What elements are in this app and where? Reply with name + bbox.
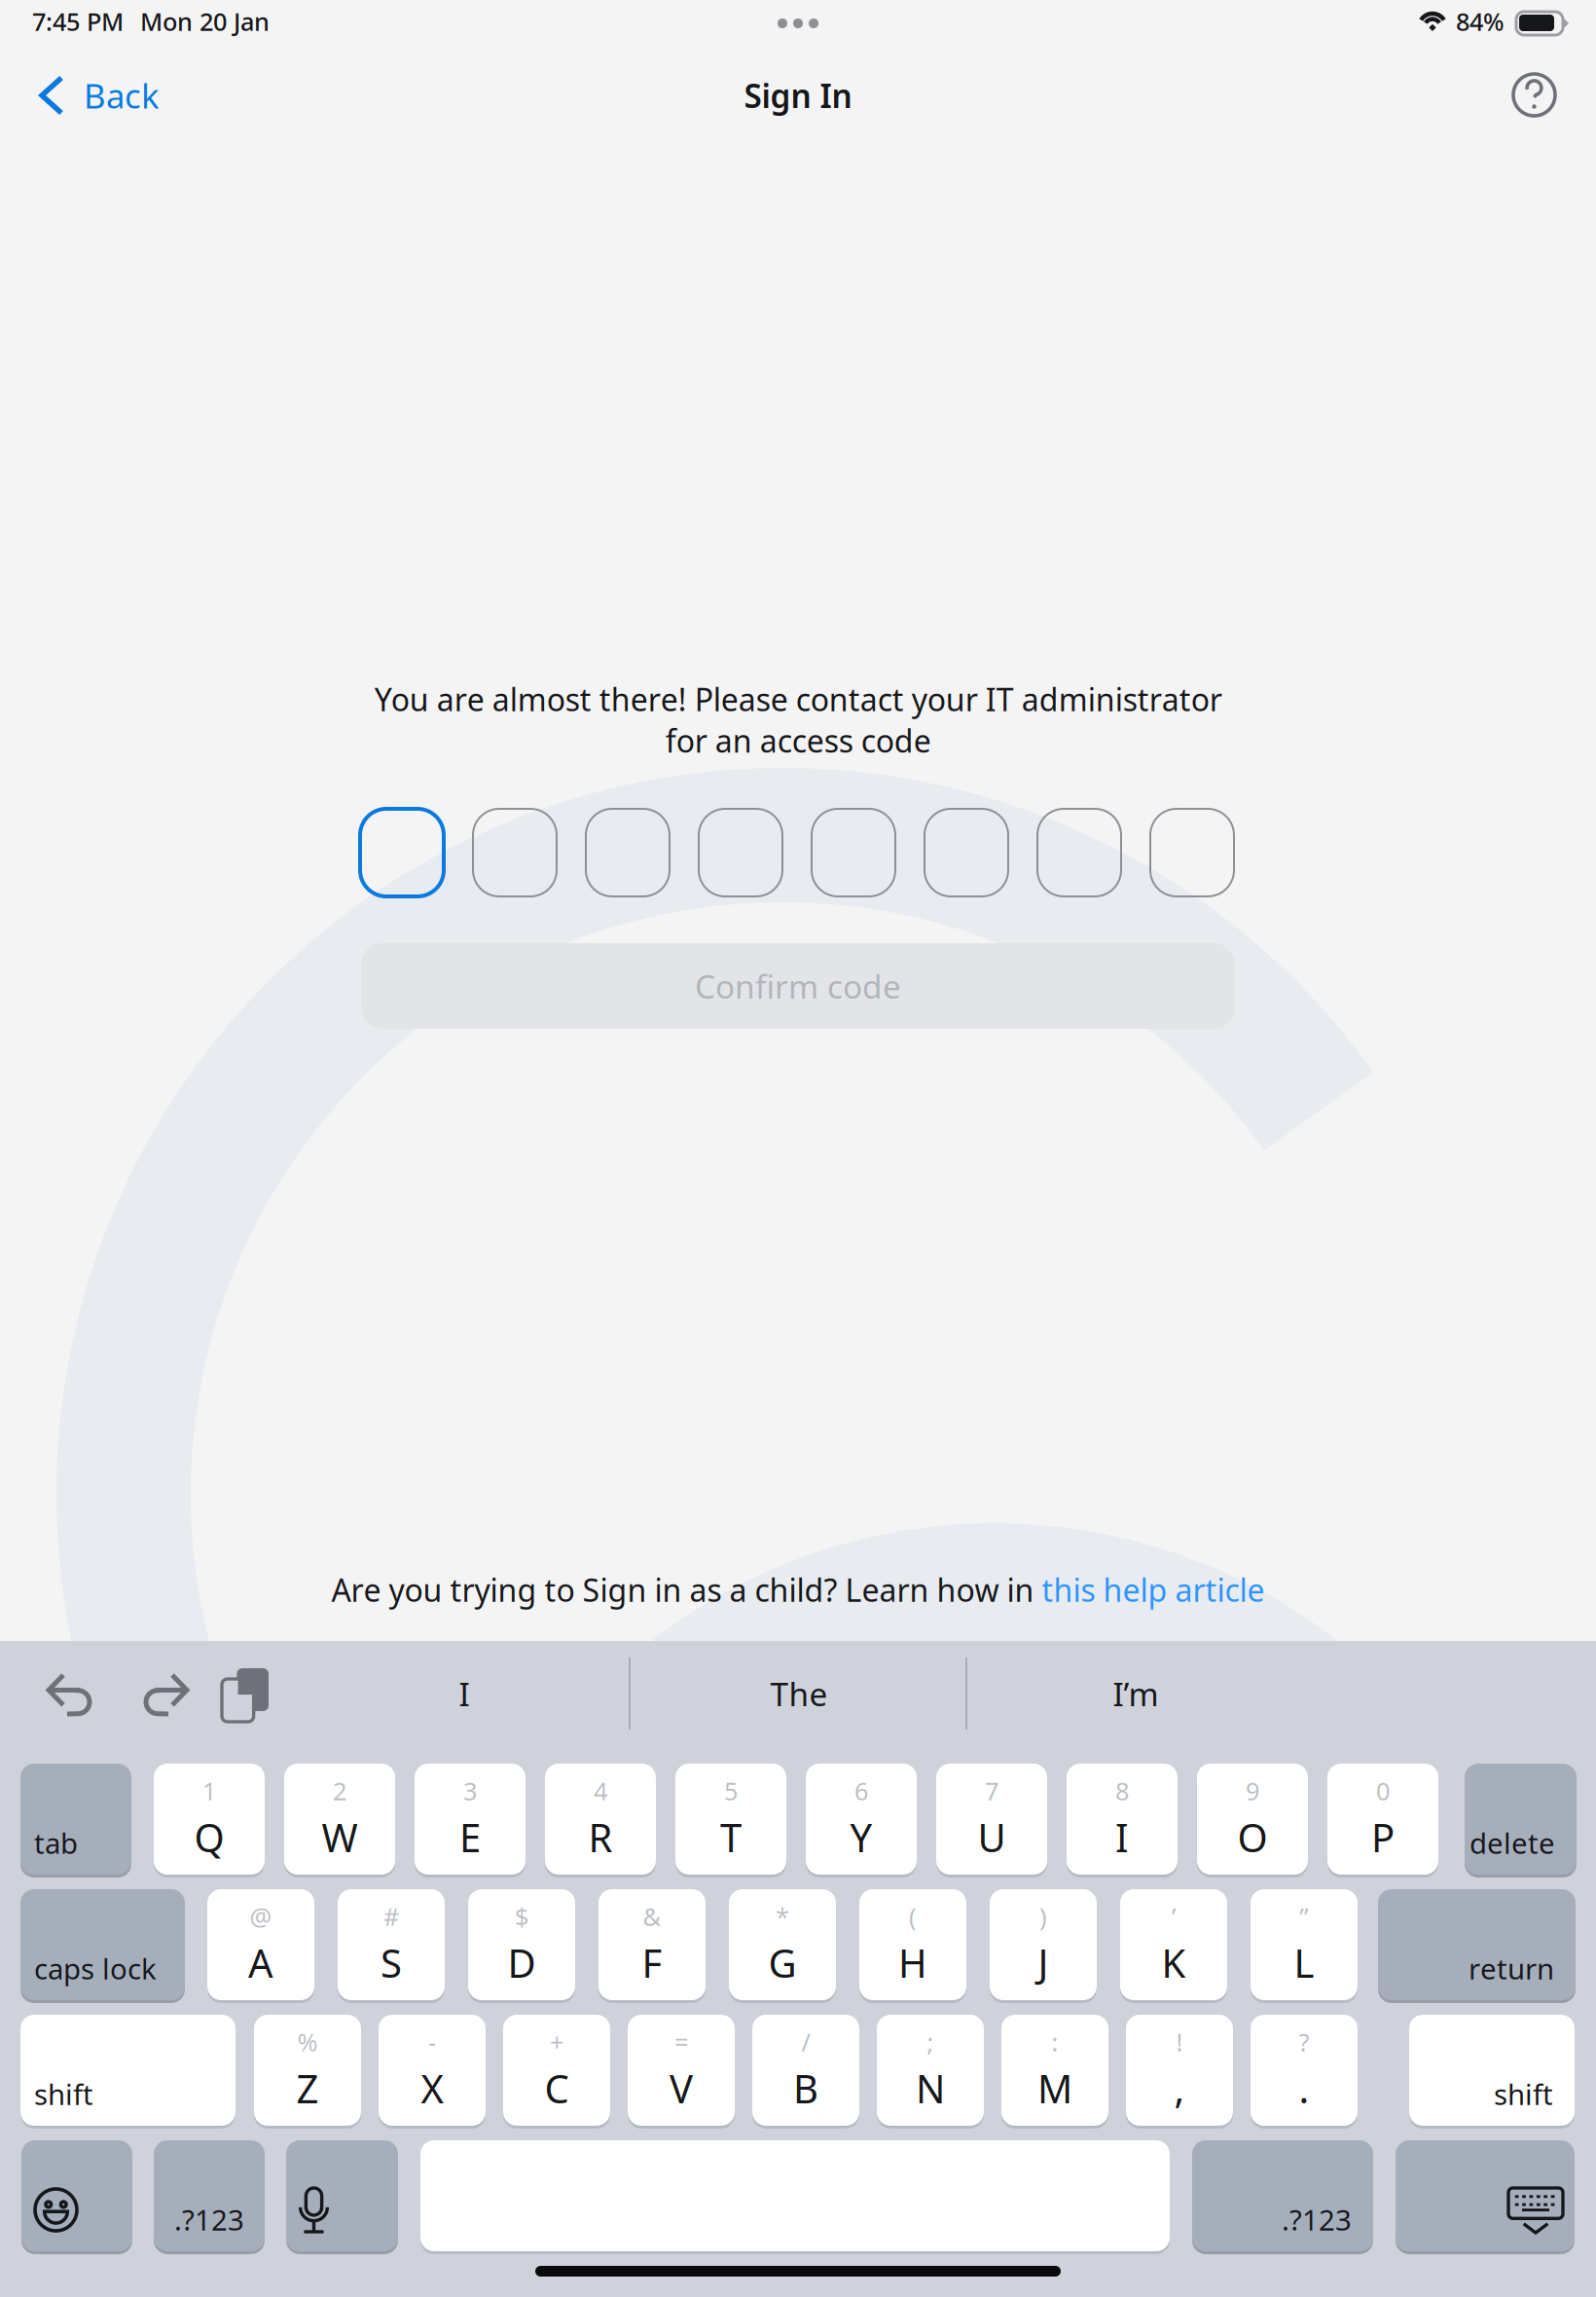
staticText: C bbox=[544, 2062, 569, 2114]
button[interactable]: ? bbox=[1251, 2015, 1358, 2126]
staticText: K bbox=[1161, 1937, 1186, 1989]
button[interactable]: * bbox=[729, 1889, 836, 2000]
staticText: U bbox=[978, 1811, 1006, 1863]
button[interactable]: Help bbox=[1496, 56, 1573, 133]
button[interactable]: I’m bbox=[968, 1649, 1303, 1738]
staticText: 84% bbox=[1456, 5, 1505, 38]
button[interactable]: .?123 bbox=[1192, 2140, 1373, 2251]
button[interactable]: Are you trying to Sign in as a child? Le… bbox=[0, 1559, 1596, 1620]
button[interactable]: 8 bbox=[1067, 1764, 1178, 1875]
button[interactable]: # bbox=[338, 1889, 445, 2000]
button[interactable]: $ bbox=[468, 1889, 575, 2000]
button[interactable]: The bbox=[632, 1649, 966, 1738]
staticText: .?123 bbox=[1282, 2201, 1352, 2239]
button[interactable]: 3 bbox=[415, 1764, 526, 1875]
button[interactable]: Dictation bbox=[286, 2140, 398, 2251]
staticText: shift bbox=[1494, 2075, 1553, 2113]
staticText: 3 bbox=[463, 1774, 477, 1807]
staticText: L bbox=[1294, 1937, 1314, 1989]
button[interactable]: + bbox=[503, 2015, 610, 2126]
staticText: R bbox=[588, 1811, 613, 1863]
button[interactable]: Confirm code bbox=[361, 943, 1235, 1029]
button[interactable]: 4 bbox=[545, 1764, 656, 1875]
staticText: / bbox=[801, 2025, 810, 2058]
button[interactable]: ! bbox=[1126, 2015, 1233, 2126]
staticText: # bbox=[383, 1900, 399, 1933]
staticText: You are almost there! Please contact you… bbox=[374, 678, 1222, 761]
staticText: shift bbox=[34, 2075, 93, 2113]
staticText: & bbox=[643, 1900, 661, 1933]
button[interactable]: Hide keyboard bbox=[1396, 2140, 1575, 2251]
staticText: 9 bbox=[1246, 1774, 1259, 1807]
button[interactable]: Undo bbox=[30, 1656, 119, 1731]
button[interactable]: ’ bbox=[1120, 1889, 1227, 2000]
staticText: Q bbox=[194, 1811, 224, 1863]
button[interactable]: % bbox=[254, 2015, 361, 2126]
button[interactable]: ; bbox=[877, 2015, 984, 2126]
staticText: caps lock bbox=[34, 1950, 157, 1987]
staticText: 7 bbox=[985, 1774, 998, 1807]
staticText: ? bbox=[1299, 2025, 1309, 2058]
staticText: .?123 bbox=[174, 2201, 244, 2239]
staticText: % bbox=[297, 2025, 318, 2058]
staticText: X bbox=[421, 2062, 443, 2114]
button[interactable]: & bbox=[598, 1889, 706, 2000]
button[interactable]: = bbox=[628, 2015, 735, 2126]
button[interactable]: 7 bbox=[936, 1764, 1047, 1875]
button[interactable]: tab bbox=[20, 1764, 131, 1875]
button[interactable]: delete bbox=[1465, 1764, 1577, 1875]
staticText: Y bbox=[850, 1811, 872, 1863]
button[interactable]: 2 bbox=[284, 1764, 395, 1875]
staticText: , bbox=[1174, 2062, 1185, 2114]
button[interactable]: shift bbox=[1409, 2015, 1575, 2126]
button[interactable]: ) bbox=[990, 1889, 1097, 2000]
staticText: H bbox=[898, 1937, 927, 1989]
button[interactable]: / bbox=[752, 2015, 859, 2126]
staticText: Z bbox=[296, 2062, 319, 2114]
staticText: J bbox=[1038, 1937, 1049, 1989]
button[interactable]: Paste bbox=[206, 1653, 284, 1737]
staticText: 5 bbox=[724, 1774, 738, 1807]
staticText: F bbox=[642, 1937, 662, 1989]
button[interactable]: ( bbox=[859, 1889, 966, 2000]
button[interactable]: Redo bbox=[117, 1656, 205, 1731]
button[interactable]: return bbox=[1378, 1889, 1576, 2000]
staticText: 7:45 PM bbox=[32, 5, 124, 38]
button[interactable]: - bbox=[379, 2015, 486, 2126]
staticText: T bbox=[720, 1811, 742, 1863]
staticText: 2 bbox=[333, 1774, 346, 1807]
staticText: = bbox=[674, 2025, 688, 2058]
button[interactable]: 0 bbox=[1327, 1764, 1438, 1875]
staticText: ” bbox=[1300, 1900, 1308, 1933]
staticText: I’m bbox=[1113, 1672, 1159, 1715]
button[interactable] bbox=[420, 2140, 1170, 2251]
button[interactable]: : bbox=[1001, 2015, 1108, 2126]
staticText: tab bbox=[34, 1824, 78, 1862]
staticText: B bbox=[793, 2062, 818, 2114]
staticText: Back bbox=[84, 73, 160, 118]
button[interactable]: Back bbox=[26, 57, 175, 133]
staticText: . bbox=[1299, 2062, 1309, 2114]
staticText: delete bbox=[1469, 1824, 1555, 1862]
staticText: D bbox=[508, 1937, 536, 1989]
button[interactable]: .?123 bbox=[154, 2140, 265, 2251]
button[interactable]: 6 bbox=[806, 1764, 917, 1875]
staticText: V bbox=[670, 2062, 693, 2114]
button[interactable]: 9 bbox=[1197, 1764, 1308, 1875]
button[interactable]: 1 bbox=[154, 1764, 265, 1875]
staticText: E bbox=[459, 1811, 481, 1863]
staticText: 0 bbox=[1376, 1774, 1390, 1807]
button[interactable]: 5 bbox=[675, 1764, 786, 1875]
staticText: I bbox=[459, 1672, 470, 1715]
staticText: Are you trying to Sign in as a child? Le… bbox=[331, 1569, 1042, 1610]
staticText: $ bbox=[515, 1900, 528, 1933]
staticText: : bbox=[1052, 2025, 1058, 2058]
button[interactable]: ” bbox=[1251, 1889, 1358, 2000]
button[interactable]: shift bbox=[20, 2015, 236, 2126]
staticText: G bbox=[768, 1937, 797, 1989]
button[interactable]: Emoji bbox=[21, 2140, 132, 2251]
staticText: ( bbox=[909, 1900, 917, 1933]
button[interactable]: @ bbox=[207, 1889, 314, 2000]
button[interactable]: caps lock bbox=[20, 1889, 185, 2000]
button[interactable]: I bbox=[299, 1649, 630, 1738]
